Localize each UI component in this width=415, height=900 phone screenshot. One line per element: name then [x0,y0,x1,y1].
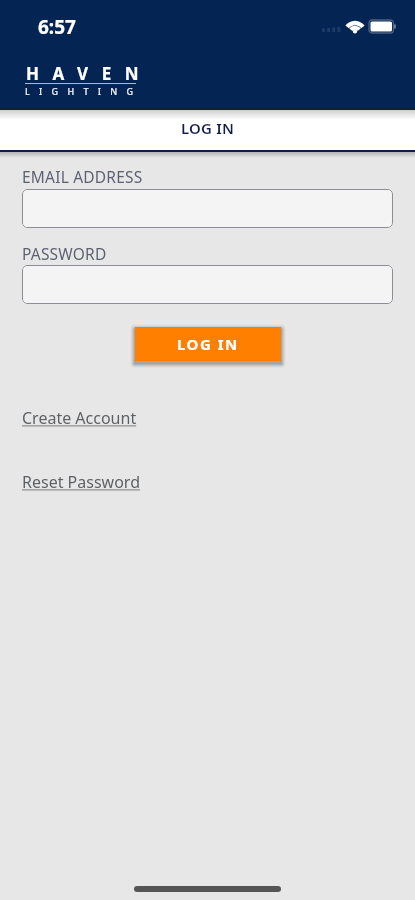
other: Battery [369,20,397,33]
staticText: EMAIL ADDRESS [22,166,143,187]
staticText: 6:57 [38,14,76,40]
staticText: LIGHTING [25,85,143,97]
other: Wi-Fi [345,20,365,33]
button[interactable] [22,189,393,228]
staticText: LOG IN [181,118,235,138]
button[interactable] [22,265,393,304]
staticText: Reset Password [22,471,140,493]
button[interactable]: LOG IN [135,327,281,361]
button[interactable]: Reset Password [22,471,140,493]
button[interactable]: Create Account [22,407,137,429]
staticText: Create Account [22,407,137,429]
other: Cellular signal [322,27,341,32]
staticText: HAVEN [26,62,152,85]
staticText: PASSWORD [22,243,107,264]
button[interactable]: LOG IN [0,110,415,150]
staticText: LOG IN [177,334,239,354]
